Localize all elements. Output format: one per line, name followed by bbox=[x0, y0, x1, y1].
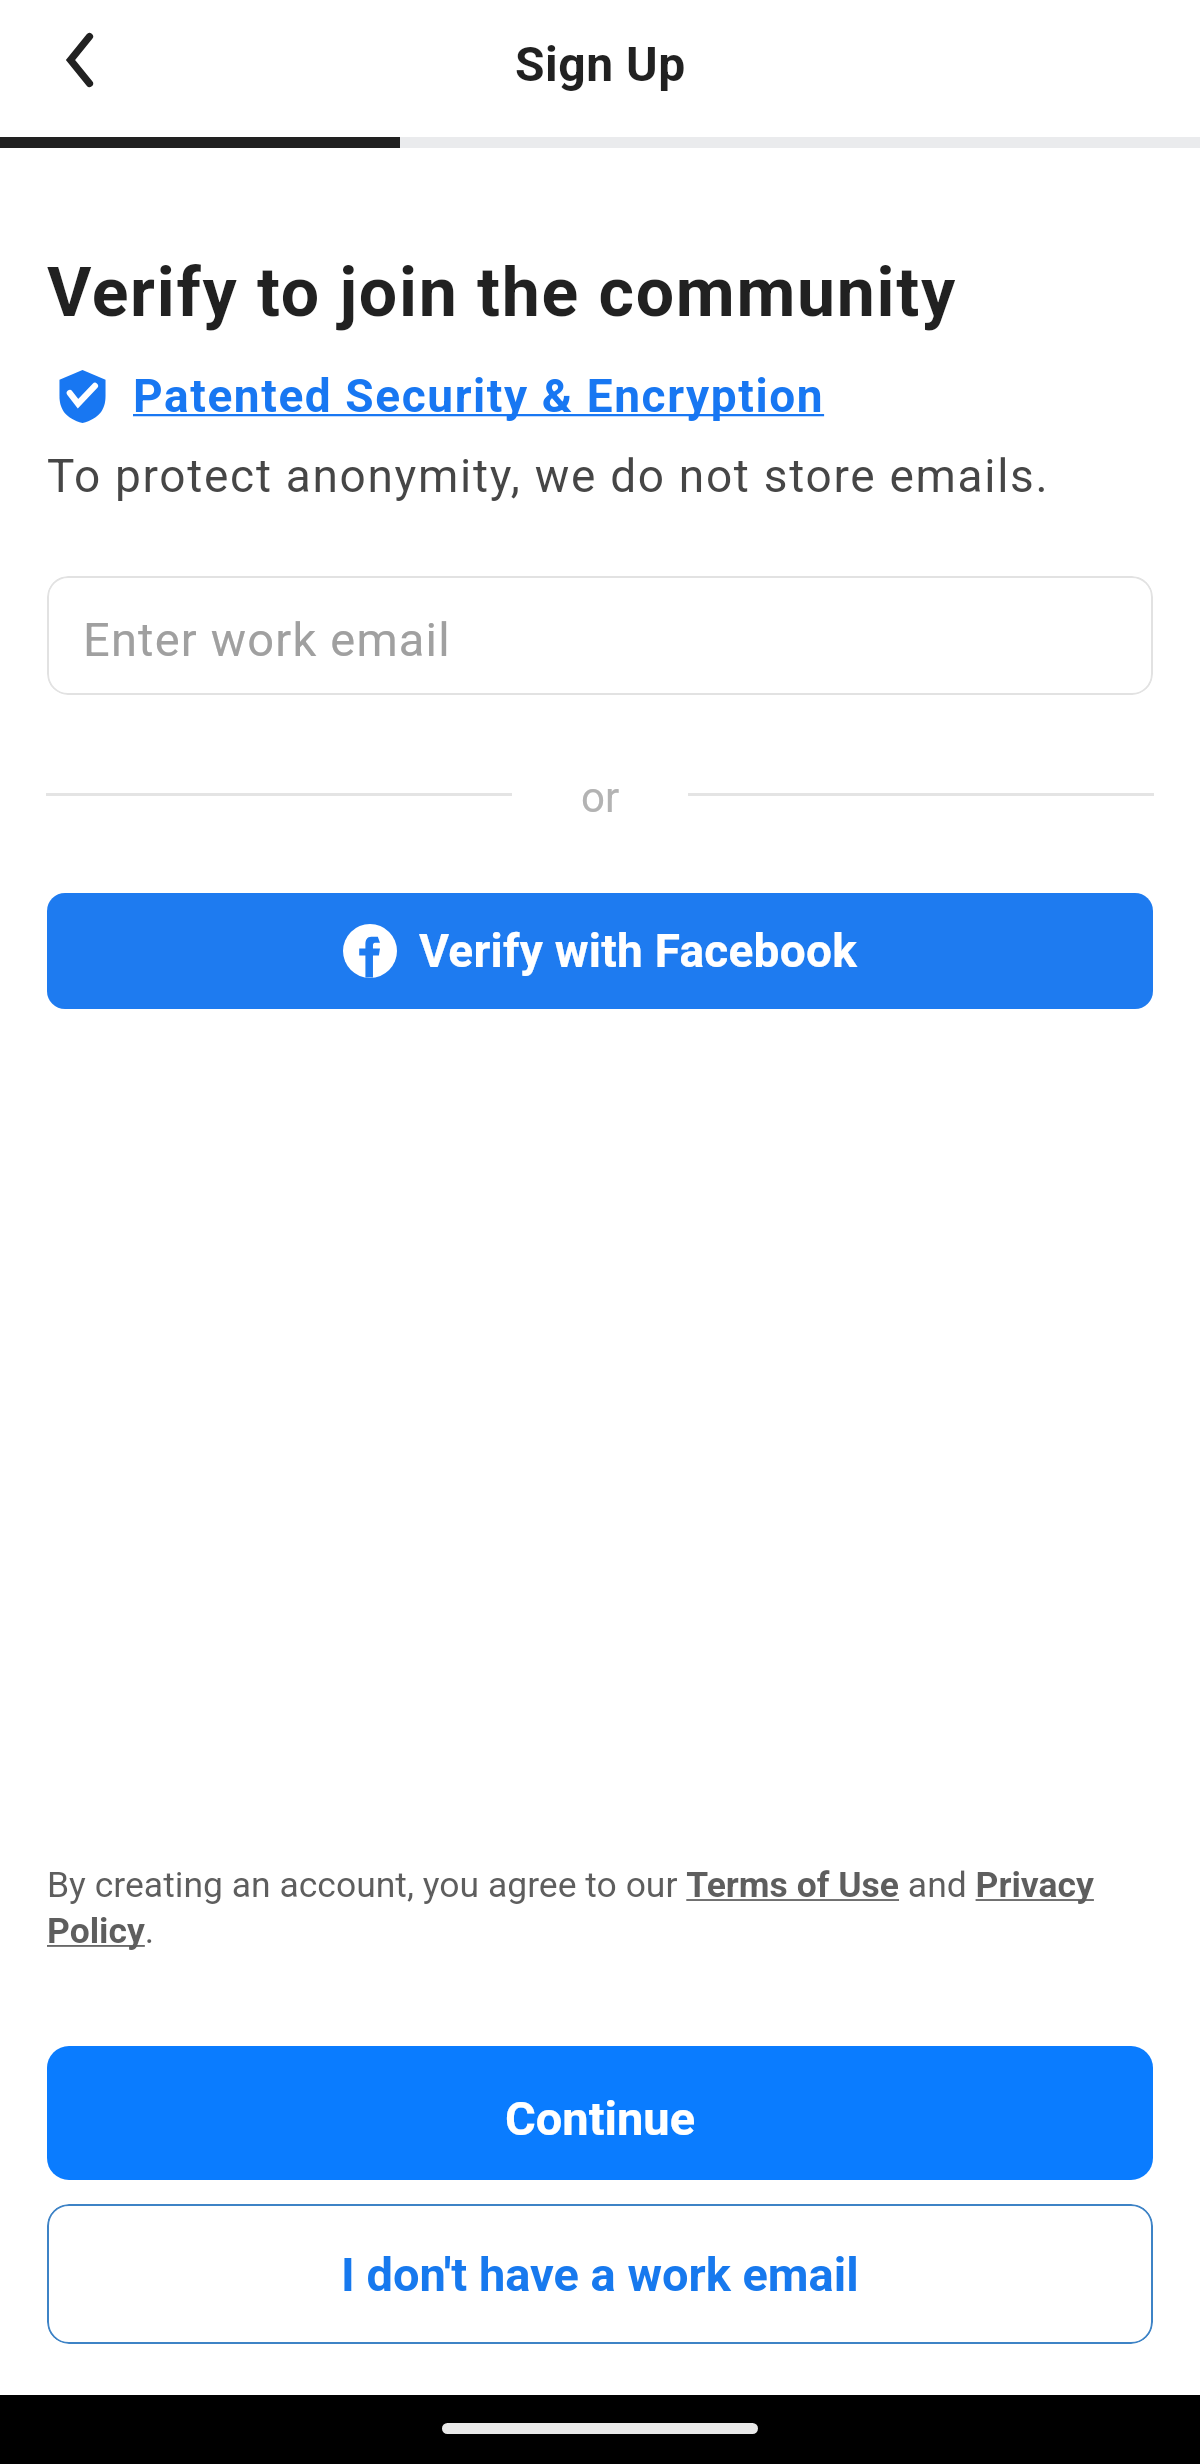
staticText: Continue bbox=[505, 2091, 696, 2146]
staticText: Enter work email bbox=[83, 612, 451, 667]
button[interactable]: I don't have a work email bbox=[47, 2204, 1153, 2344]
staticText: I don't have a work email bbox=[341, 2247, 859, 2302]
staticText: Verify to join the community bbox=[47, 253, 957, 333]
staticText: Patented Security & Encryption bbox=[133, 369, 825, 423]
staticText: or bbox=[581, 773, 620, 822]
staticText: Sign Up bbox=[515, 36, 686, 92]
button[interactable]: Back bbox=[30, 8, 130, 108]
staticText: To protect anonymity, we do not store em… bbox=[47, 449, 1050, 503]
button[interactable]: Verify with Facebook bbox=[47, 893, 1153, 1009]
button[interactable]: Continue bbox=[47, 2046, 1153, 2180]
button[interactable]: Patented Security & Encryption bbox=[59, 369, 825, 423]
button[interactable]: Enter work email bbox=[47, 576, 1153, 695]
staticText: By creating an account, you agree to our… bbox=[47, 1864, 1155, 1952]
staticText: Verify with Facebook bbox=[419, 924, 857, 978]
